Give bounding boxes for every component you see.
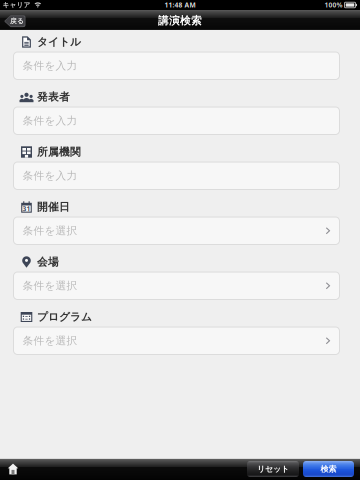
staticText: 講演検索 bbox=[158, 14, 202, 27]
button[interactable]: 条件を選択 bbox=[13, 272, 339, 299]
staticText: 検索 bbox=[320, 464, 336, 474]
staticText: プログラム bbox=[37, 310, 92, 323]
button[interactable]: 条件を入力 bbox=[13, 162, 339, 189]
button[interactable]: リセット bbox=[247, 461, 299, 477]
staticText: 条件を入力 bbox=[22, 114, 77, 127]
staticText: キャリア bbox=[2, 1, 30, 9]
staticText: 31 bbox=[22, 204, 30, 213]
button[interactable]: 条件を選択 bbox=[13, 327, 339, 354]
staticText: 開催日 bbox=[37, 200, 70, 213]
staticText: 条件を入力 bbox=[22, 169, 77, 182]
staticText: タイトル bbox=[37, 35, 81, 48]
button[interactable]: 条件を入力 bbox=[13, 107, 339, 134]
button[interactable]: 条件を入力 bbox=[13, 52, 339, 79]
staticText: 11:48 AM bbox=[164, 1, 195, 9]
button[interactable]: 検索 bbox=[303, 461, 354, 477]
button[interactable]: 戻る bbox=[4, 15, 25, 27]
button[interactable]: 条件を選択 bbox=[13, 217, 339, 244]
staticText: 所属機関 bbox=[37, 145, 81, 158]
staticText: 会場 bbox=[37, 255, 59, 268]
staticText: 戻る bbox=[10, 17, 24, 25]
staticText: 発表者 bbox=[37, 90, 70, 103]
staticText: 条件を選択 bbox=[22, 279, 77, 292]
staticText: リセット bbox=[257, 464, 289, 474]
staticText: 条件を選択 bbox=[22, 334, 77, 347]
button[interactable]: ホーム bbox=[4, 458, 22, 480]
staticText: 条件を選択 bbox=[22, 224, 77, 237]
staticText: 100% bbox=[324, 1, 342, 9]
staticText: 条件を入力 bbox=[22, 59, 77, 72]
